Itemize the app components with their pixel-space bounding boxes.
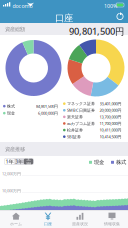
staticText: auカブコム証券	[67, 121, 95, 126]
staticText: 10,411,000円	[99, 127, 121, 133]
staticText: 資産状況	[72, 221, 88, 226]
button[interactable]: 情報収集	[96, 210, 128, 228]
staticText: 情報収集	[104, 221, 120, 226]
staticText: 資産推移	[5, 146, 25, 153]
button[interactable]: 更新	[114, 10, 126, 23]
staticText: 13,700,000円	[99, 114, 121, 119]
staticText: 11,700,000円	[99, 121, 121, 126]
staticText: docomo	[12, 2, 32, 9]
button[interactable]: 口座	[32, 210, 64, 228]
staticText: 10,414,500円	[99, 134, 121, 139]
staticText: ホーム	[10, 221, 22, 226]
staticText: 株式	[116, 159, 126, 166]
staticText: 口座	[44, 221, 52, 226]
staticText: 1年	[5, 158, 13, 165]
staticText: 90,801,500円	[69, 25, 124, 37]
staticText: 楽天証券	[67, 114, 83, 119]
staticText: 10,000万円	[2, 188, 21, 193]
staticText: 口座	[55, 12, 73, 24]
staticText: 6,000,000円	[38, 110, 58, 116]
staticText: 現金	[7, 111, 15, 116]
staticText: マネックス証券	[67, 101, 95, 106]
staticText: 3年	[15, 158, 23, 165]
staticText: 資産総額	[5, 26, 25, 33]
staticText: 12,000万円	[2, 171, 21, 176]
staticText: 20,000,000円	[99, 108, 121, 113]
staticText: 84,801,500円	[36, 103, 58, 109]
staticText: 33,401,000円	[99, 101, 121, 106]
staticText: SBI証券	[67, 134, 81, 139]
button[interactable]: 1年	[4, 158, 34, 165]
button[interactable]: 資産状況	[64, 210, 96, 228]
staticText: 100%	[104, 2, 117, 9]
staticText: 現金	[94, 159, 104, 166]
staticText: 松井証券	[67, 128, 83, 132]
staticText: 株式	[7, 104, 15, 109]
staticText: SMBC日興証券	[67, 108, 95, 113]
staticText: 全期	[26, 155, 31, 168]
button[interactable]: ホーム	[0, 210, 32, 228]
